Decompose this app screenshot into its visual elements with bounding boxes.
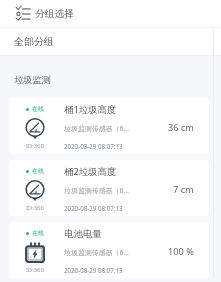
button[interactable]: 在线 [9,160,209,216]
staticText: 电池电量 [64,228,102,240]
staticText: 垃圾监测传感器（6… [64,248,129,257]
staticText: 在线 [32,229,44,237]
other: 分组选择 [16,7,30,21]
staticText: 2020-08-29 08:07:13 [64,204,123,212]
button[interactable]: 分组选择 [0,0,221,27]
staticText: 桶2垃圾高度 [64,165,117,178]
staticText: ID:360 [26,266,44,274]
staticText: 36 cm [168,121,194,134]
staticText: 2020-08-29 08:07:13 [64,266,123,274]
staticText: 2020-08-29 08:07:13 [64,142,123,150]
staticText: 垃圾监测传感器（6… [64,124,129,133]
staticText: 全部分组 [14,35,54,48]
button[interactable]: 全部分组 [0,28,221,55]
staticText: 分组选择 [35,8,74,20]
staticText: 在线 [32,105,44,113]
staticText: 100 % [168,245,194,258]
staticText: 7 cm [173,183,194,196]
staticText: 垃圾监测 [14,74,51,86]
staticText: 垃圾监测传感器（6… [64,186,129,195]
staticText: 在线 [32,167,44,175]
button[interactable]: 在线 [9,98,209,154]
staticText: ID:360 [26,204,44,212]
button[interactable]: 在线 [9,222,209,278]
staticText: 桶1垃圾高度 [64,103,117,116]
staticText: ID:360 [26,142,44,150]
